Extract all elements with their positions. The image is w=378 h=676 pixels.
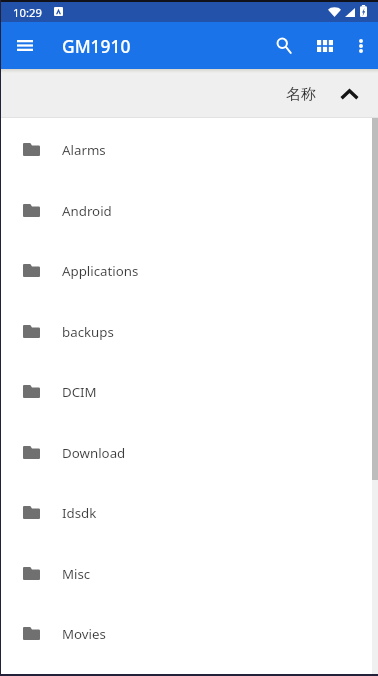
staticText: DCIM — [62, 383, 97, 401]
staticText: 10:29 — [13, 5, 42, 20]
staticText: GM1910 — [62, 34, 131, 58]
button[interactable]: Alarms — [0, 119, 378, 180]
staticText: Idsdk — [62, 504, 97, 522]
button[interactable]: More options — [341, 26, 378, 66]
button[interactable]: Applications — [0, 240, 378, 301]
button[interactable]: backups — [0, 301, 378, 362]
staticText: 名称 — [286, 85, 316, 104]
staticText: Android — [62, 202, 112, 220]
staticText: Applications — [62, 262, 139, 280]
staticText: Movies — [62, 625, 106, 643]
button[interactable]: Grid view — [305, 26, 345, 66]
button[interactable]: Download — [0, 422, 378, 483]
button[interactable]: 名称 — [278, 72, 359, 116]
staticText: Download — [62, 444, 126, 462]
button[interactable]: Android — [0, 180, 378, 241]
button[interactable]: Open navigation drawer — [1, 22, 49, 69]
button[interactable]: Search — [264, 26, 304, 66]
staticText: Alarms — [62, 141, 106, 159]
button[interactable]: Movies — [0, 603, 378, 664]
button[interactable]: DCIM — [0, 361, 378, 422]
staticText: Misc — [62, 565, 91, 583]
button[interactable]: Idsdk — [0, 482, 378, 543]
staticText: backups — [62, 323, 114, 341]
button[interactable]: Misc — [0, 543, 378, 604]
